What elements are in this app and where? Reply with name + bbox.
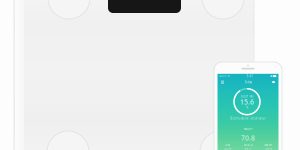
staticText: 22.4 [224,147,231,150]
button[interactable]: WATER [258,143,278,150]
staticText: LTE [226,74,229,78]
button[interactable]: BMI [217,143,238,150]
staticText: BODY FAT [240,95,253,98]
button[interactable]: MUSCLE [238,143,258,150]
staticText: BMI [225,143,230,147]
button[interactable]: History [269,79,277,86]
staticText: 9:41 [246,74,253,78]
staticText: 70.8 [241,133,255,142]
staticText: Today [244,80,251,84]
staticText: Slightly above ideal range [230,117,266,120]
staticText: MUSCLE [243,143,252,147]
staticText: % [246,106,248,109]
staticText: 54.1 [244,147,251,150]
staticText: 58% [265,147,271,150]
staticText: WEIGHT [243,127,252,131]
staticText: 15.6 [240,97,254,106]
button[interactable]: Menu [218,79,226,86]
staticText: WATER [264,143,272,147]
